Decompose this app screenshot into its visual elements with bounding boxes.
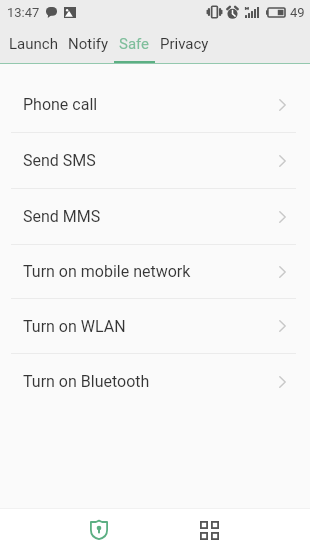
button[interactable]: Turn on WLAN: [0, 299, 310, 354]
button[interactable]: Launch: [4, 24, 63, 64]
staticText: 13:47: [7, 5, 40, 20]
button[interactable]: Privacy: [155, 24, 214, 64]
staticText: Turn on Bluetooth: [23, 372, 150, 391]
staticText: Privacy: [160, 35, 209, 53]
staticText: 49: [290, 5, 305, 20]
button[interactable]: Notify: [63, 24, 114, 64]
button[interactable]: Phone call: [0, 77, 310, 133]
staticText: Turn on mobile network: [23, 262, 191, 281]
button[interactable]: Safe: [114, 24, 155, 64]
button[interactable]: Safe: [0, 509, 155, 551]
staticText: Turn on WLAN: [23, 317, 126, 336]
staticText: Phone call: [23, 95, 98, 114]
staticText: Send MMS: [23, 207, 101, 226]
staticText: Send SMS: [23, 151, 96, 170]
button[interactable]: Send MMS: [0, 189, 310, 245]
button[interactable]: Apps: [155, 509, 310, 551]
staticText: Safe: [119, 35, 150, 53]
staticText: Launch: [9, 35, 58, 53]
staticText: Notify: [68, 35, 109, 53]
button[interactable]: Turn on Bluetooth: [0, 354, 310, 409]
button[interactable]: Send SMS: [0, 133, 310, 189]
button[interactable]: Turn on mobile network: [0, 245, 310, 299]
